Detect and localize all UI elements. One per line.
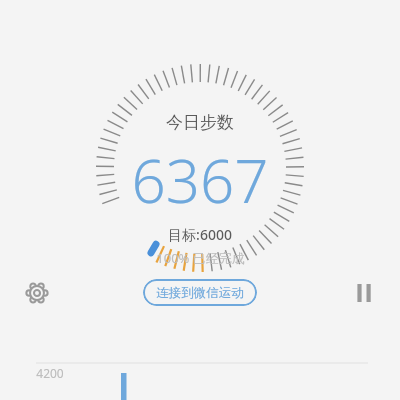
button[interactable]: 连接到微信运动 — [143, 279, 257, 306]
staticText: 今日步数 — [166, 112, 234, 133]
button[interactable]: Pause — [344, 274, 382, 312]
staticText: 连接到微信运动 — [156, 285, 244, 301]
staticText: 目标:6000 — [168, 225, 232, 244]
button[interactable]: Settings — [18, 274, 56, 312]
staticText: 4200 — [36, 365, 64, 381]
staticText: 100% 已经完成 — [156, 249, 245, 267]
staticText: 6367 — [131, 139, 269, 221]
